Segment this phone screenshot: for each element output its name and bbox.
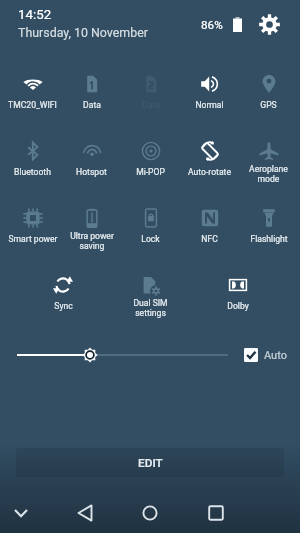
button[interactable]: Smart power bbox=[3, 184, 62, 251]
staticText: GPS bbox=[260, 100, 277, 110]
button[interactable]: Back bbox=[62, 491, 108, 533]
button[interactable]: Brightness bbox=[9, 343, 236, 367]
button[interactable]: TMC20_WIFI bbox=[3, 50, 62, 117]
button[interactable]: Mi-POP bbox=[121, 117, 180, 184]
staticText: Auto-rotate bbox=[188, 167, 231, 177]
staticText: NFC bbox=[201, 234, 218, 244]
staticText: Flashlight bbox=[250, 234, 288, 244]
staticText: Dolby bbox=[227, 301, 249, 311]
staticText: 86% bbox=[201, 18, 223, 32]
staticText: Data bbox=[142, 100, 160, 110]
staticText: Sync bbox=[54, 301, 73, 311]
staticText: Ultra power saving bbox=[70, 231, 114, 251]
staticText: Lock bbox=[141, 234, 160, 244]
button[interactable]: GPS bbox=[239, 50, 298, 117]
button[interactable]: Normal bbox=[180, 50, 239, 117]
staticText: 14:52 bbox=[18, 7, 52, 23]
staticText: TMC20_WIFI bbox=[8, 100, 57, 110]
staticText: Hotspot bbox=[76, 167, 107, 177]
button[interactable]: Hotspot bbox=[62, 117, 121, 184]
staticText: Bluetooth bbox=[14, 167, 51, 177]
button[interactable]: Dual SIM settings bbox=[120, 251, 180, 318]
button[interactable]: Auto bbox=[244, 348, 287, 362]
staticText: Aeroplane mode bbox=[249, 164, 288, 184]
staticText: Data bbox=[83, 100, 101, 110]
button[interactable]: Settings bbox=[256, 11, 282, 37]
button[interactable]: Collapse bbox=[0, 491, 44, 533]
button[interactable]: Lock bbox=[121, 184, 180, 251]
button[interactable]: Dolby bbox=[208, 251, 268, 318]
staticText: Thursday, 10 November bbox=[18, 25, 148, 40]
button[interactable]: Home bbox=[127, 491, 173, 533]
button[interactable]: NFC bbox=[180, 184, 239, 251]
button[interactable]: Ultra power saving bbox=[62, 184, 121, 251]
staticText: Dual SIM settings bbox=[133, 298, 168, 318]
button[interactable]: Bluetooth bbox=[3, 117, 62, 184]
button[interactable]: Aeroplane mode bbox=[239, 117, 298, 184]
button[interactable]: Data bbox=[62, 50, 121, 117]
staticText: Smart power bbox=[8, 234, 58, 244]
staticText: Auto bbox=[264, 349, 287, 362]
staticText: EDIT bbox=[138, 456, 163, 470]
button[interactable]: Sync bbox=[33, 251, 93, 318]
staticText: Mi-POP bbox=[136, 167, 165, 177]
button[interactable]: EDIT bbox=[16, 448, 284, 477]
button[interactable]: Flashlight bbox=[239, 184, 298, 251]
staticText: Normal bbox=[195, 100, 224, 110]
button[interactable]: Recents bbox=[193, 491, 239, 533]
button[interactable]: Auto-rotate bbox=[180, 117, 239, 184]
